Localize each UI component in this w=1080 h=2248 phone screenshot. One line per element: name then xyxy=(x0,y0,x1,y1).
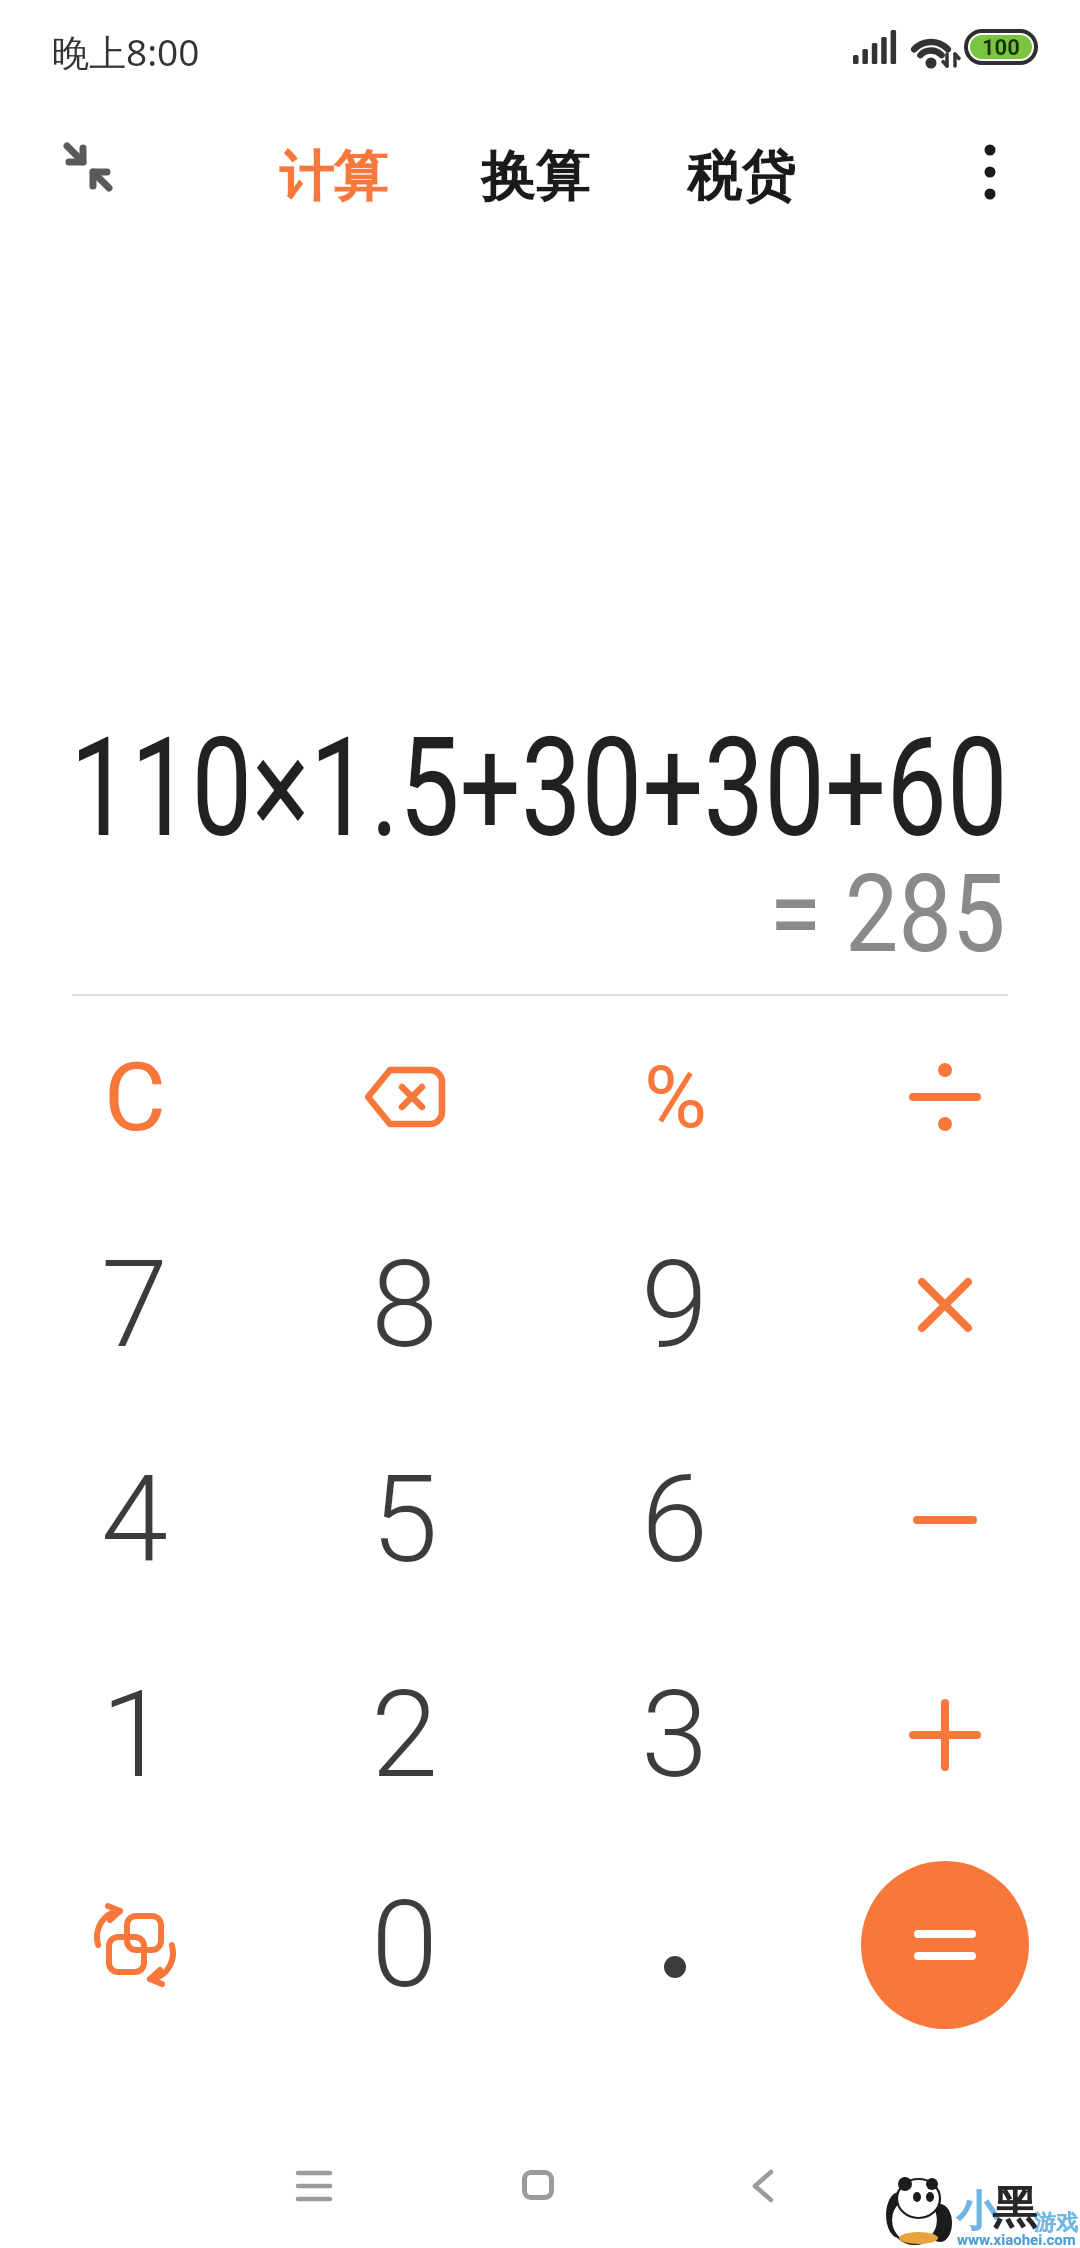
button[interactable] xyxy=(270,991,540,1203)
button[interactable] xyxy=(810,1414,1080,1626)
staticText: 2 xyxy=(371,1664,439,1806)
staticText: % xyxy=(644,1047,707,1148)
staticText: www.xiaohei.com xyxy=(957,2231,1076,2248)
button[interactable] xyxy=(540,1839,810,2051)
staticText: 8 xyxy=(371,1234,439,1376)
button[interactable]: 9 xyxy=(540,1199,810,1411)
staticText: 7 xyxy=(101,1234,169,1376)
button[interactable] xyxy=(861,1861,1029,2029)
button[interactable]: C xyxy=(0,991,270,1203)
button[interactable]: 1 xyxy=(0,1629,270,1841)
button[interactable] xyxy=(974,139,1006,205)
button[interactable]: 3 xyxy=(540,1629,810,1841)
button[interactable] xyxy=(62,141,114,193)
button[interactable]: 换算 xyxy=(481,143,589,211)
staticText: 小 xyxy=(956,2186,998,2239)
staticText: 4 xyxy=(101,1449,169,1591)
staticText: 100 xyxy=(982,35,1020,59)
staticText: 5 xyxy=(371,1449,439,1591)
staticText: = 285 xyxy=(769,852,1006,977)
staticText: 110×1.5+30+30+60 xyxy=(70,708,1008,869)
staticText: 9 xyxy=(641,1234,709,1376)
button[interactable]: % xyxy=(540,991,810,1203)
button[interactable] xyxy=(810,991,1080,1203)
staticText: 晚上8:00 xyxy=(52,26,200,77)
button[interactable]: 7 xyxy=(0,1199,270,1411)
staticText: 黑 xyxy=(992,2180,1037,2237)
staticText: 3 xyxy=(641,1664,709,1806)
button[interactable] xyxy=(810,1839,1080,2051)
button[interactable]: 5 xyxy=(270,1414,540,1626)
staticText: C xyxy=(104,1042,166,1153)
button[interactable]: 税贷 xyxy=(687,143,795,211)
button[interactable] xyxy=(810,1199,1080,1411)
button[interactable] xyxy=(522,2170,554,2200)
button[interactable]: 计算 xyxy=(279,143,387,211)
button[interactable] xyxy=(0,1839,270,2051)
button[interactable]: 8 xyxy=(270,1199,540,1411)
button[interactable]: 0 xyxy=(270,1839,540,2051)
button[interactable]: 6 xyxy=(540,1414,810,1626)
staticText: 6 xyxy=(641,1449,709,1591)
staticText: 游戏 xyxy=(1034,2209,1078,2237)
button[interactable] xyxy=(751,2170,775,2202)
button[interactable] xyxy=(296,2170,332,2202)
button[interactable]: 4 xyxy=(0,1414,270,1626)
staticText: 1 xyxy=(101,1664,169,1806)
button[interactable]: 2 xyxy=(270,1629,540,1841)
button[interactable] xyxy=(810,1629,1080,1841)
staticText: 0 xyxy=(371,1874,439,2016)
